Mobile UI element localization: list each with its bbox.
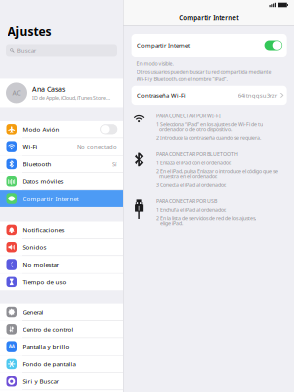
staticText: Contraseña Wi-Fi: [137, 91, 186, 99]
staticText: General: [22, 308, 43, 316]
button[interactable]: Modo Avión: [0, 121, 123, 138]
button[interactable]: Wi-Fi: [0, 138, 123, 155]
staticText: Compartir Internet: [179, 14, 238, 22]
staticText: 2 En el iPad, pulsa Enlazar o introduce …: [156, 168, 278, 180]
staticText: PARA CONECTAR POR BLUETOOTH: [156, 150, 238, 157]
staticText: Siri y Buscar: [22, 377, 59, 385]
staticText: 1 Selecciona “iPad” en los ajustes de Wi…: [156, 121, 263, 133]
staticText: Modo Avión: [22, 125, 59, 133]
staticText: Notificaciones: [22, 226, 64, 234]
staticText: 3 Conecta el iPad al ordenador.: [156, 181, 226, 188]
staticText: Otros usuarios pueden buscar tu red comp…: [137, 68, 272, 82]
button[interactable]: General: [0, 304, 123, 320]
staticText: No conectado: [77, 143, 117, 151]
button[interactable]: Notificaciones: [0, 221, 123, 238]
staticText: 2 Introduce la contraseña cuando se requ…: [156, 134, 261, 141]
staticText: Compartir Internet: [22, 194, 78, 203]
staticText: Tiempo de uso: [22, 278, 66, 286]
button[interactable]: AC: [0, 78, 123, 107]
staticText: 1 Enlaza el iPad con el ordenador.: [156, 159, 231, 166]
button[interactable]: Compartir Internet: [0, 190, 123, 207]
staticText: Pantalla y brillo: [22, 342, 69, 351]
button[interactable]: No molestar: [0, 256, 123, 273]
staticText: Datos móviles: [22, 177, 63, 185]
button[interactable]: Siri y Buscar: [0, 373, 123, 390]
button[interactable]: Datos móviles: [0, 173, 123, 190]
staticText: No molestar: [22, 260, 59, 269]
staticText: En modo visible.: [137, 60, 174, 67]
staticText: Compartir Internet: [137, 41, 190, 50]
staticText: AC: [12, 88, 20, 97]
staticText: Wi-Fi: [22, 142, 37, 151]
staticText: Fondo de pantalla: [22, 360, 75, 368]
staticText: AA: [9, 343, 15, 350]
staticText: Centro de control: [22, 325, 73, 333]
staticText: 1 Enchufa el iPad al ordenador.: [156, 206, 226, 213]
button[interactable]: Sonidos: [0, 239, 123, 256]
button[interactable]: Bluetooth: [0, 155, 123, 172]
button[interactable]: Fondo de pantalla: [0, 355, 123, 372]
button[interactable]: Contraseña Wi-Fi: [124, 86, 287, 105]
staticText: 2 En la lista de servicios de red de los…: [156, 215, 256, 227]
staticText: ID de Apple, iCloud, iTunes Store…: [32, 94, 110, 101]
staticText: Bluetooth: [22, 160, 51, 168]
staticText: Sí: [112, 160, 117, 168]
staticText: Ana Casas: [32, 84, 65, 94]
staticText: Sonidos: [22, 243, 46, 251]
button[interactable]: Tiempo de uso: [0, 273, 123, 290]
staticText: PARA CONECTAR POR USB: [156, 197, 217, 204]
button[interactable]: AA: [0, 338, 123, 355]
staticText: Buscar: [17, 46, 37, 55]
button[interactable]: Centro de control: [0, 321, 123, 338]
staticText: PARA CONECTAR POR WI-FI: [156, 112, 221, 119]
staticText: Ajustes: [7, 23, 51, 39]
staticText: 64itnqqsu3rzr: [238, 91, 277, 99]
